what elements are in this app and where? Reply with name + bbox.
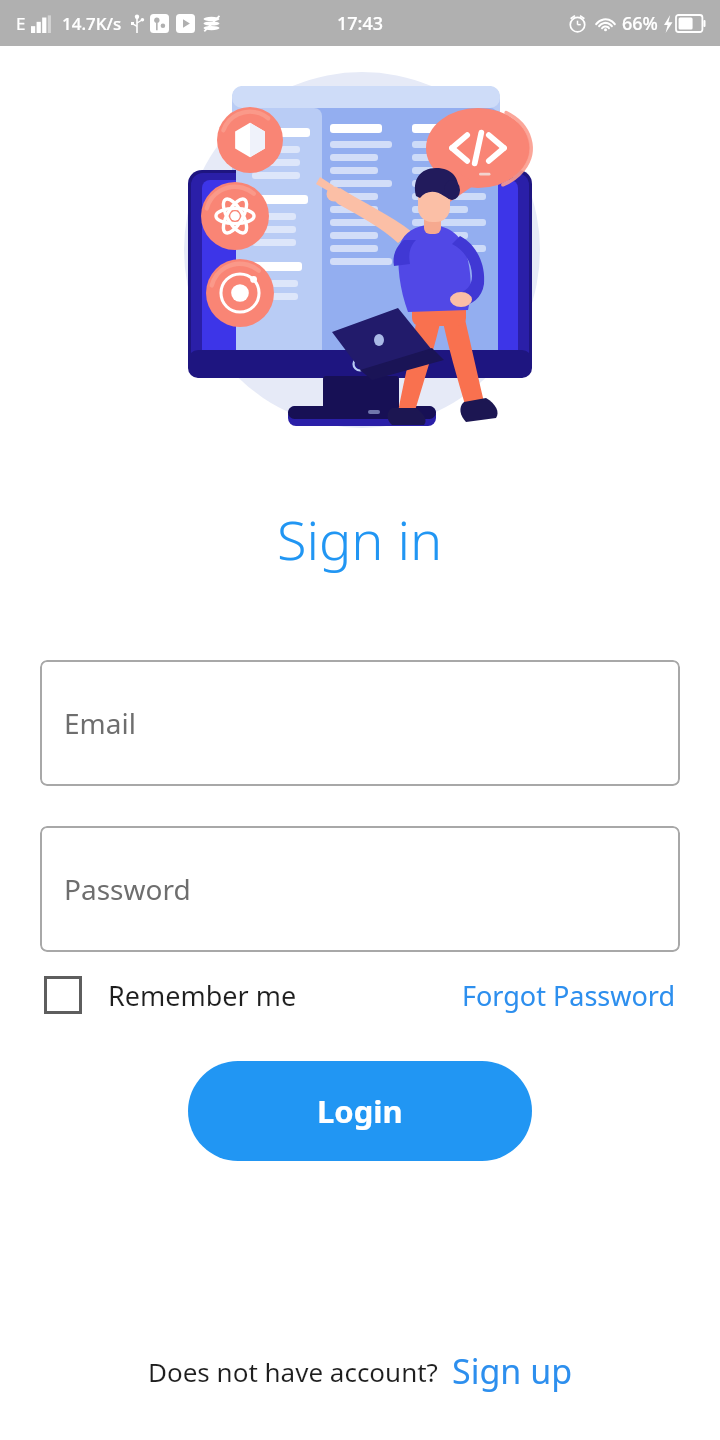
staticText: Remember me [108,977,297,1014]
button[interactable]: Sign up [452,1348,573,1394]
button[interactable]: Email [40,660,680,786]
staticText: Sign up [452,1348,573,1394]
staticText: Email [64,704,136,742]
staticText: Forgot Password [462,977,676,1014]
button[interactable]: Remember me checkbox [44,976,297,1014]
staticText: E [16,12,26,35]
button[interactable]: Forgot Password [462,977,676,1014]
staticText: Password [64,870,191,908]
staticText: Login [317,1090,403,1132]
button[interactable]: Login [188,1061,532,1161]
staticText: 14.7K/s [62,12,122,35]
button[interactable]: Password [40,826,680,952]
staticText: Does not have account? [148,1354,438,1389]
staticText: 66% [622,11,658,36]
staticText: 17:43 [337,11,384,36]
staticText: Sign in [277,502,443,576]
other: Remember me checkbox [44,976,82,1014]
